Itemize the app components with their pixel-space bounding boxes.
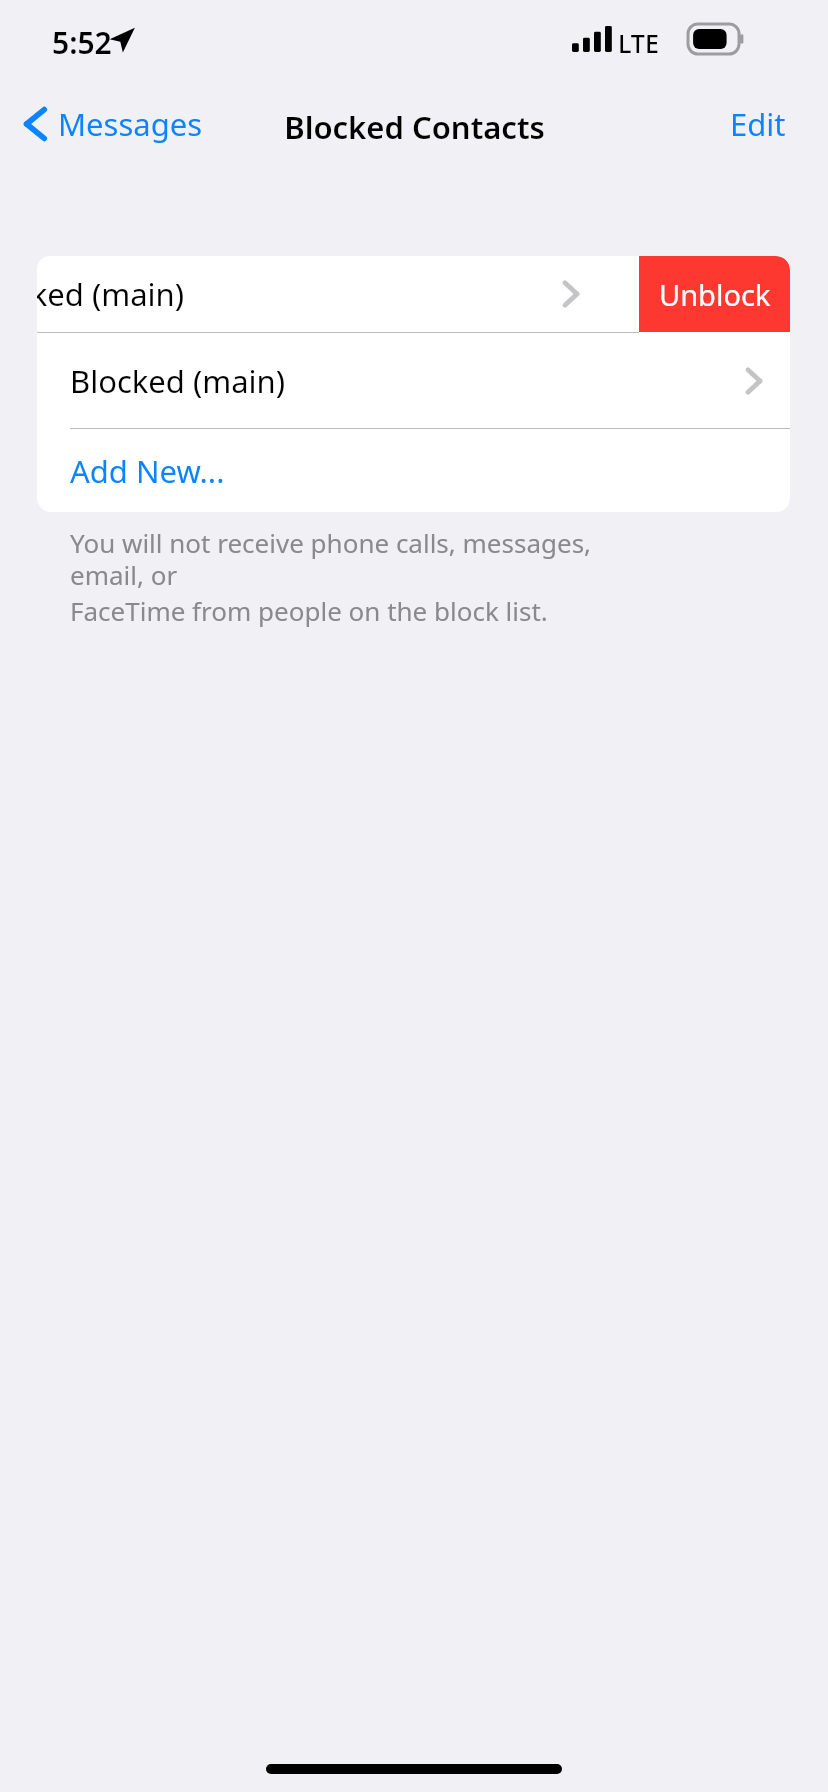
staticText: Blocked (main) bbox=[70, 360, 286, 402]
staticText: You will not receive phone calls, messag… bbox=[70, 525, 670, 593]
staticText: Edit bbox=[730, 103, 786, 145]
button[interactable]: Edit bbox=[620, 96, 808, 152]
staticText: Messages bbox=[58, 103, 203, 145]
staticText: Add New... bbox=[70, 450, 225, 492]
staticText: FaceTime from people on the block list. bbox=[70, 593, 548, 628]
staticText: Blocked (main) bbox=[37, 273, 185, 315]
other: Open bbox=[746, 367, 762, 395]
button[interactable]: Unblock bbox=[639, 256, 790, 332]
staticText: 5:52 bbox=[52, 22, 112, 63]
button[interactable]: Messages bbox=[14, 96, 215, 152]
staticText: LTE bbox=[618, 26, 659, 60]
other: Open bbox=[563, 280, 579, 308]
staticText: Unblock bbox=[659, 275, 771, 314]
button[interactable]: Add New... bbox=[37, 429, 790, 512]
button[interactable]: Blocked (main) bbox=[37, 333, 790, 428]
staticText: Blocked Contacts bbox=[284, 106, 545, 148]
button[interactable]: Blocked (main) bbox=[37, 256, 639, 332]
